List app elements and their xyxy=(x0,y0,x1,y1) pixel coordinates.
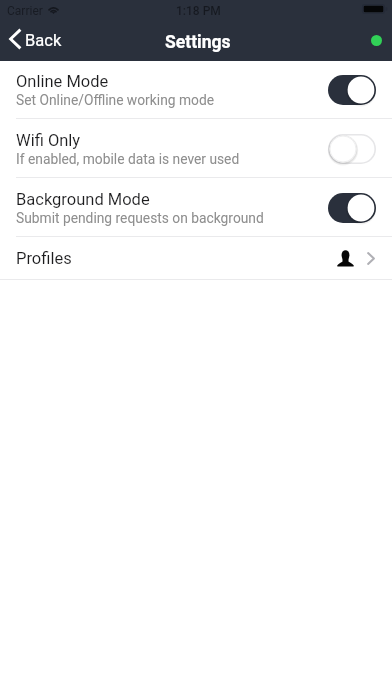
staticText: Submit pending requests on background xyxy=(16,210,264,226)
button[interactable]: Online status xyxy=(366,30,387,51)
button[interactable]: Wifi Only xyxy=(0,119,392,178)
other: Wi-Fi xyxy=(47,5,60,14)
button[interactable]: Profiles xyxy=(0,237,392,280)
staticText: Background Mode xyxy=(16,190,150,209)
staticText: Settings xyxy=(165,32,231,53)
button[interactable]: Back xyxy=(0,24,72,56)
button[interactable]: Online Mode xyxy=(0,61,392,119)
staticText: Back xyxy=(25,31,62,50)
staticText: Wifi Only xyxy=(16,131,81,150)
staticText: If enabled, mobile data is never used xyxy=(16,151,240,167)
other: Back xyxy=(9,28,22,50)
button[interactable]: Background Mode xyxy=(0,178,392,237)
staticText: Set Online/Offline working mode xyxy=(16,92,214,108)
staticText: Carrier xyxy=(7,4,43,18)
other: Profile xyxy=(337,250,354,267)
button[interactable]: Switch on xyxy=(328,193,376,223)
staticText: 1:18 PM xyxy=(176,4,221,18)
button[interactable]: Switch on xyxy=(328,75,376,105)
staticText: Online Mode xyxy=(16,72,109,91)
button[interactable]: Switch off xyxy=(328,134,376,164)
staticText: Profiles xyxy=(16,249,72,268)
